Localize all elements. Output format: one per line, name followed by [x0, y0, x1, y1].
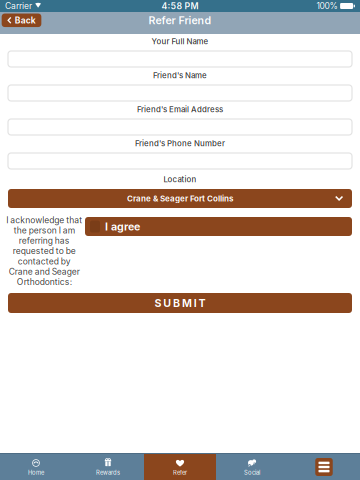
button[interactable]: SUBMIT — [8, 293, 352, 313]
staticText: 4:58 PM — [161, 1, 198, 11]
button[interactable] — [8, 85, 352, 101]
button[interactable]: Back — [2, 14, 41, 27]
staticText: 100% — [316, 1, 337, 11]
staticText: Location — [163, 175, 196, 184]
button[interactable]: I agree — [85, 217, 352, 236]
button[interactable]: Rewards — [72, 454, 144, 480]
button[interactable]: Home — [0, 454, 72, 480]
staticText: Social — [244, 469, 260, 476]
button[interactable] — [8, 119, 352, 135]
staticText: Crane & Seager Fort Collins — [127, 194, 233, 203]
staticText: Home — [28, 469, 44, 476]
staticText: Your Full Name — [151, 37, 208, 46]
staticText: Friend's Name — [153, 71, 207, 80]
staticText: SUBMIT — [154, 296, 205, 309]
button[interactable]: Menu — [288, 454, 360, 480]
button[interactable] — [8, 51, 352, 67]
button[interactable]: Crane & Seager Fort Collins — [8, 189, 352, 208]
button[interactable] — [8, 153, 352, 169]
staticText: I acknowledge that the person I am refer… — [6, 215, 82, 287]
staticText: I agree — [105, 220, 140, 233]
staticText: Rewards — [96, 469, 120, 476]
staticText: Friend's Phone Number — [135, 139, 225, 148]
staticText: Back — [15, 15, 36, 25]
button[interactable]: Refer — [144, 454, 216, 480]
staticText: Friend's Email Address — [137, 105, 223, 114]
staticText: Refer Friend — [148, 14, 211, 27]
button[interactable]: Social — [216, 454, 288, 480]
staticText: Carrier — [5, 1, 32, 11]
staticText: Refer — [173, 469, 187, 476]
